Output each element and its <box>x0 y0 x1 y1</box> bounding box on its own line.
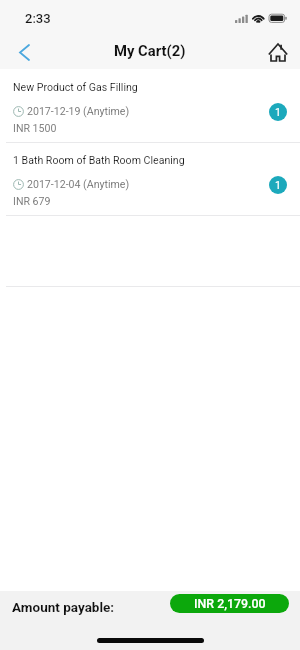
staticText: New Product of Gas Filling <box>13 81 138 93</box>
staticText: 2017-12-19 (Anytime) <box>27 105 130 117</box>
staticText: 1 <box>275 106 281 118</box>
staticText: My Cart(2) <box>114 42 186 59</box>
button[interactable]: Back <box>2 30 46 69</box>
staticText: 1 Bath Room of Bath Room Cleaning <box>13 154 185 166</box>
staticText: INR 1500 <box>13 122 57 134</box>
staticText: 2:33 <box>25 11 51 26</box>
staticText: INR 679 <box>13 195 51 207</box>
button[interactable]: INR 2,179.00 <box>170 594 289 613</box>
staticText: 2017-12-04 (Anytime) <box>27 178 130 190</box>
staticText: 1 <box>275 179 281 191</box>
button[interactable]: 1 Bath Room of Bath Room Cleaning <box>0 143 300 216</box>
button[interactable]: New Product of Gas Filling <box>0 69 300 143</box>
staticText: INR 2,179.00 <box>194 596 266 611</box>
button[interactable]: Home <box>256 30 300 69</box>
staticText: Amount payable: <box>12 599 115 615</box>
